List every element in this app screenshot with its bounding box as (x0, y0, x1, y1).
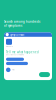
staticText: Symptomate (10, 33, 25, 36)
staticText: of symptoms (4, 24, 22, 27)
staticText: Describe your symptoms (6, 54, 24, 56)
staticText: Tell me what happened (6, 50, 39, 54)
staticText: Dr. Sandra (6, 46, 13, 47)
staticText: Search among hundreds (4, 20, 40, 23)
staticText: Hello (12, 69, 15, 71)
